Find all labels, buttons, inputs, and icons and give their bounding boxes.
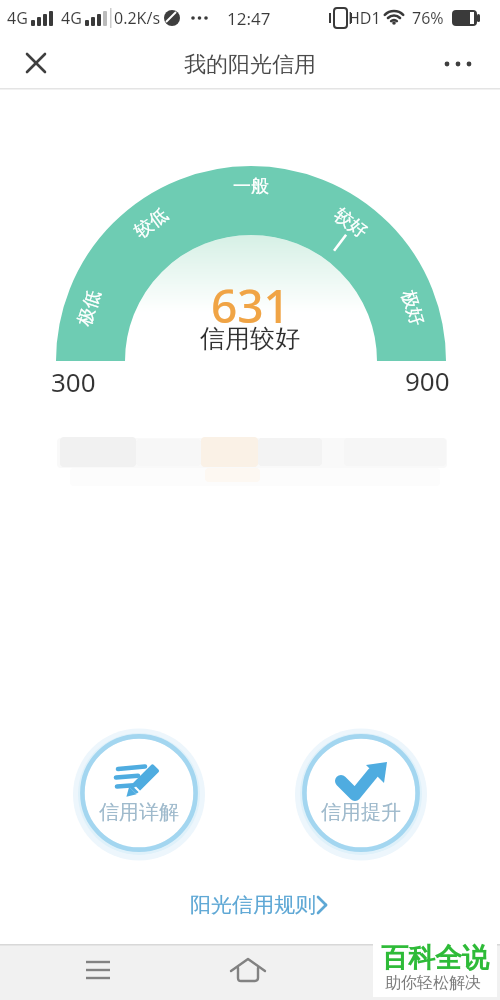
button[interactable] [81,735,197,851]
staticText: 4G [7,7,28,29]
staticText: 极好 [396,287,429,329]
staticText: 4G [61,7,82,29]
button[interactable] [20,47,54,81]
staticText: HD1 [348,7,381,29]
button[interactable] [224,948,272,994]
staticText: 助你轻松解决 [385,973,481,993]
staticText: 较低 [130,203,173,243]
staticText: 一般 [233,175,269,198]
staticText: 信用提升 [321,800,401,825]
staticText: 300 [51,364,96,396]
staticText: 极低 [73,287,106,329]
staticText: 12:47 [227,7,271,29]
button[interactable] [74,948,122,994]
button[interactable] [303,735,419,851]
button[interactable] [440,47,486,81]
button[interactable]: 阳光信用规则 [170,890,335,920]
staticText: 631 [211,274,290,334]
staticText: 信用较好 [200,323,300,354]
staticText: 较好 [329,203,372,243]
staticText: 信用详解 [99,800,179,825]
staticText: 阳光信用规则 [190,892,316,918]
staticText: 900 [405,363,450,395]
staticText: 我的阳光信用 [184,51,316,79]
staticText: 百科全说 [381,941,489,975]
staticText: 0.2K/s [114,7,161,29]
staticText: 76% [412,7,444,29]
